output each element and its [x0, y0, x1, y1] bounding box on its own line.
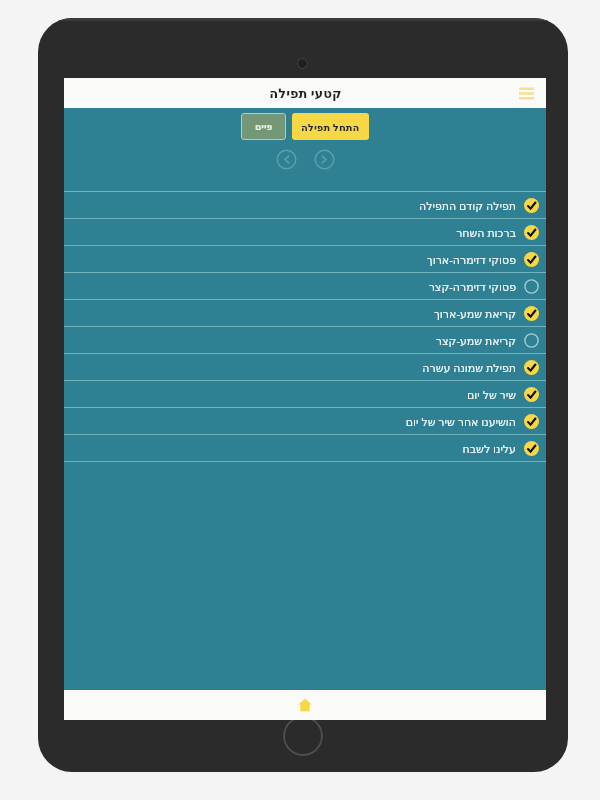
staticText: הושיענו אחר שיר של יום — [405, 414, 516, 429]
button[interactable]: Next — [314, 149, 335, 170]
staticText: תפילת שמונה עשרה — [422, 360, 516, 375]
button[interactable]: פיים — [241, 113, 286, 140]
staticText: קטעי תפילה — [269, 84, 342, 102]
button[interactable]: Home — [292, 692, 318, 718]
staticText: עלינו לשבח — [462, 441, 516, 456]
staticText: פסוקי דזימרה-ארוך — [426, 252, 516, 267]
button[interactable]: שיר של יום — [64, 381, 546, 407]
button[interactable]: הושיענו אחר שיר של יום — [64, 408, 546, 434]
button[interactable]: קריאת שמע-קצר — [64, 327, 546, 353]
button[interactable]: פסוקי דזימרה-ארוך — [64, 246, 546, 272]
button[interactable]: ברכות השחר — [64, 219, 546, 245]
staticText: תפילה קודם התפילה — [418, 198, 516, 213]
button[interactable]: תפילה קודם התפילה — [64, 192, 546, 218]
staticText: שיר של יום — [467, 387, 516, 402]
button[interactable]: Previous — [276, 149, 297, 170]
button[interactable]: קריאת שמע-ארוך — [64, 300, 546, 326]
button[interactable]: תפילת שמונה עשרה — [64, 354, 546, 380]
staticText: ברכות השחר — [456, 225, 516, 240]
button[interactable]: התחל תפילה — [292, 113, 369, 140]
staticText: קריאת שמע-ארוך — [433, 306, 516, 321]
button[interactable]: Menu — [514, 81, 538, 105]
button[interactable]: פסוקי דזימרה-קצר — [64, 273, 546, 299]
button[interactable]: עלינו לשבח — [64, 435, 546, 461]
button[interactable]: Home button — [283, 716, 323, 756]
staticText: קריאת שמע-קצר — [435, 333, 516, 348]
staticText: פיים — [255, 122, 273, 132]
staticText: התחל תפילה — [301, 120, 360, 134]
staticText: פסוקי דזימרה-קצר — [428, 279, 516, 294]
